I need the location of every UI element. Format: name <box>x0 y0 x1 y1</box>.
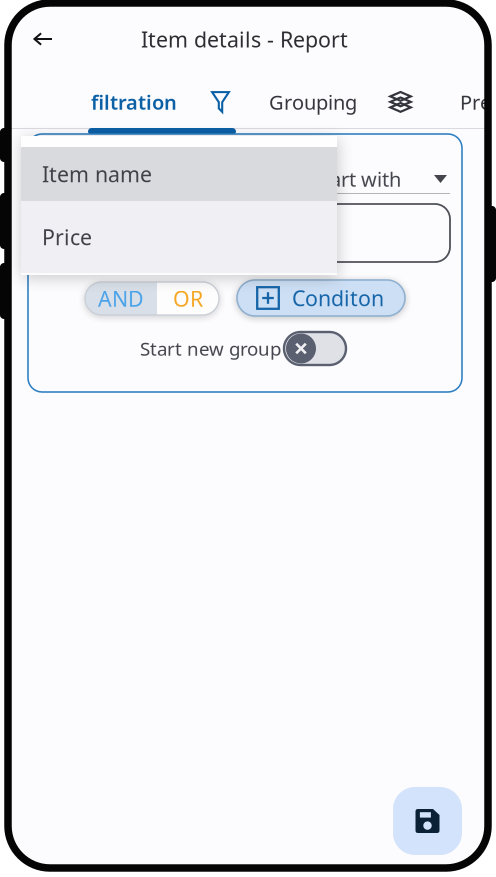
button[interactable]: Item name <box>21 147 337 201</box>
staticText: Price <box>42 223 92 251</box>
button[interactable]: Save <box>393 787 462 855</box>
staticText: filtration <box>91 89 177 115</box>
staticText: Field <box>42 166 85 192</box>
button[interactable]: Price <box>21 201 337 273</box>
staticText: Item name <box>42 160 152 188</box>
button[interactable]: Pre <box>460 87 491 117</box>
staticText: Start new group <box>140 336 281 361</box>
button[interactable]: OR <box>157 282 219 315</box>
button[interactable]: Grouping <box>269 87 412 117</box>
staticText: AND <box>98 284 144 313</box>
button[interactable]: Start with <box>312 165 450 194</box>
button[interactable]: Start new group <box>284 332 346 365</box>
staticText: Conditon <box>292 284 384 312</box>
staticText: Start with <box>312 166 401 192</box>
button[interactable]: Conditon <box>237 280 405 316</box>
button[interactable]: Back <box>21 22 65 56</box>
button[interactable]: AND <box>85 282 157 315</box>
button[interactable]: filtration <box>91 87 230 117</box>
staticText: Pre <box>460 89 491 115</box>
staticText: OR <box>173 284 203 313</box>
button[interactable]: Field <box>42 165 300 194</box>
staticText: Grouping <box>269 89 357 115</box>
staticText: Item details - Report <box>141 25 348 53</box>
